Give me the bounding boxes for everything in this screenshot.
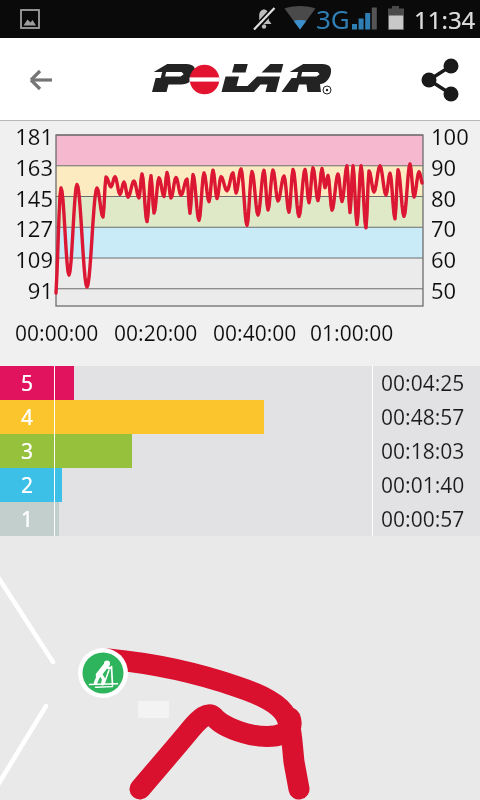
staticText: 181	[15, 121, 53, 151]
staticText: 163	[15, 152, 53, 182]
button[interactable]: Back	[14, 53, 68, 107]
staticText: 3	[21, 437, 34, 466]
staticText: 145	[15, 183, 53, 213]
staticText: 109	[15, 244, 53, 274]
staticText: 70	[431, 213, 457, 243]
button[interactable]: 1	[0, 502, 480, 536]
staticText: 00:00:00	[15, 319, 99, 348]
button[interactable]: 2	[0, 468, 480, 502]
staticText: 00:20:00	[114, 319, 198, 348]
staticText: 00:18:03	[381, 437, 465, 466]
staticText: 00:04:25	[381, 369, 465, 398]
staticText: 01:00:00	[310, 319, 394, 348]
staticText: 5	[21, 369, 34, 398]
staticText: 00:48:57	[381, 403, 465, 432]
staticText: 100	[431, 121, 469, 151]
staticText: 2	[21, 471, 34, 500]
staticText: 50	[431, 275, 457, 305]
staticText: 00:40:00	[213, 319, 297, 348]
staticText: 90	[431, 152, 457, 182]
button[interactable]: Share	[416, 55, 466, 105]
staticText: 4	[21, 403, 34, 432]
staticText: 60	[431, 244, 457, 274]
staticText: 00:01:40	[381, 471, 465, 500]
button[interactable]	[0, 536, 480, 800]
staticText: 3G	[316, 1, 350, 36]
button[interactable]: 4	[0, 400, 480, 434]
staticText: 11:34	[414, 3, 476, 36]
staticText: 127	[15, 213, 53, 243]
button[interactable]: 3	[0, 434, 480, 468]
staticText: 00:00:57	[381, 505, 465, 534]
button[interactable]: 5	[0, 366, 480, 400]
staticText: 80	[431, 183, 457, 213]
staticText: 91	[27, 275, 53, 305]
staticText: 1	[21, 505, 34, 534]
